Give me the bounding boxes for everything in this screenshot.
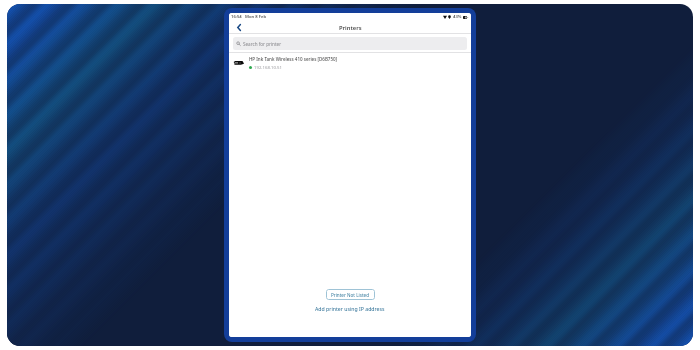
staticText: Add printer using IP address	[315, 305, 385, 312]
staticText: 192.168.10.51	[254, 64, 283, 70]
staticText: Printers	[339, 24, 362, 32]
button[interactable]: Search for printer	[233, 37, 467, 50]
staticText: 16:54	[231, 14, 242, 20]
button[interactable]: HP Ink Tank Wireless 410 series [D6B750]	[229, 53, 471, 73]
staticText: Printer Not Listed	[331, 292, 370, 298]
staticText: Mon 8 Feb	[245, 14, 267, 20]
staticText: HP Ink Tank Wireless 410 series [D6B750]	[249, 56, 338, 62]
button[interactable]: Printer Not Listed	[326, 289, 375, 300]
staticText: Search for printer	[243, 41, 282, 47]
button[interactable]: Add printer using IP address	[313, 304, 387, 313]
staticText: 43%	[453, 14, 462, 20]
button[interactable]: Back	[232, 21, 245, 34]
